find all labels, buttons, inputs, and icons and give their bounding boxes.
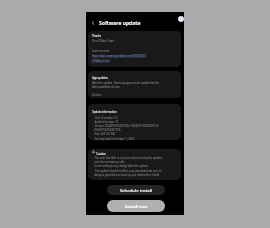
button[interactable]: Install now [107,200,165,212]
staticText: Dismiss [92,93,102,97]
staticText: App updates [92,76,108,80]
staticText: ・Version: ZSGB1/ZSGUB1FCA / ZSGB1FCH/ZSG… [92,124,159,128]
button[interactable]: Caution card [88,149,181,180]
staticText: ・Some settings may change after the upda… [92,164,149,168]
staticText: https://doc.samsungmobile.com/SM-S928U/ [92,54,146,58]
staticText: latest available version. [92,85,121,89]
staticText: Thanks [92,34,101,38]
staticText: Learn more at [92,49,110,53]
staticText: Caution [96,152,106,156]
staticText: ・Size: 3451.67 MB [92,132,116,136]
button[interactable]: Update information card [88,104,181,140]
button[interactable]: Back [89,19,97,27]
staticText: Update information [92,110,117,114]
staticText: One UI Beta Team [92,39,115,43]
staticText: ・This update shouldn't affect your perso… [92,169,162,173]
button[interactable]: Thanks card [88,31,181,67]
staticText: even for emergency calls. [94,160,125,164]
staticText: ZSGB1FCA/ZSGB1FCA [94,128,121,132]
staticText: ・You won't be able to use your phone dur… [92,156,163,160]
staticText: Install now [125,203,148,209]
staticText: ・Android version: 15 [92,120,119,124]
staticText: Schedule install [120,187,153,193]
staticText: After this update, Samsung apps can be u… [92,81,160,85]
staticText: ZSGAdoc.html [92,59,110,63]
staticText: ・One UI version: 7.0 [92,116,118,120]
button[interactable]: App updates card [88,71,181,98]
staticText: Software update [99,20,141,27]
button[interactable]: Schedule install [107,185,165,195]
staticText: always a good idea to back up your data … [94,173,160,177]
staticText: ・Security patch level: April 1, 2025 [92,137,135,141]
